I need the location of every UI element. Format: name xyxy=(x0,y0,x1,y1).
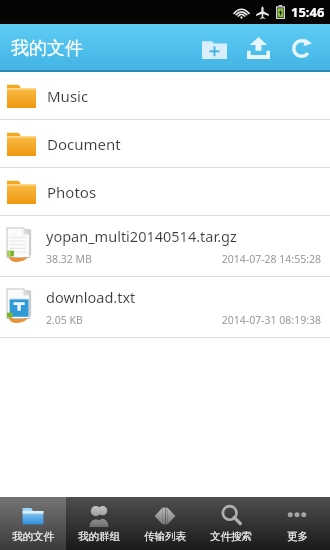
staticText: 文件搜索 xyxy=(210,530,252,543)
button[interactable]: Refresh xyxy=(280,24,322,72)
staticText: 传输列表 xyxy=(144,530,186,543)
button[interactable]: 我的文件 xyxy=(0,497,66,550)
button[interactable]: yopan_multi20140514.tar.gz xyxy=(0,216,330,276)
button[interactable]: 文件搜索 xyxy=(198,497,264,550)
staticText: 38.32 MB xyxy=(46,252,92,266)
staticText: 我的文件 xyxy=(12,530,54,543)
staticText: yopan_multi20140514.tar.gz xyxy=(46,226,237,246)
staticText: Photos xyxy=(47,182,97,202)
staticText: download.txt xyxy=(46,287,136,307)
staticText: 更多 xyxy=(287,530,308,543)
button[interactable]: download.txt xyxy=(0,277,330,337)
staticText: 2014-07-31 08:19:38 xyxy=(221,313,321,327)
staticText: 我的群组 xyxy=(78,530,120,543)
staticText: Music xyxy=(47,86,89,106)
button[interactable]: Upload xyxy=(236,24,280,72)
button[interactable]: Music xyxy=(0,72,330,119)
staticText: 我的文件 xyxy=(11,37,83,60)
staticText: Document xyxy=(47,134,121,154)
staticText: 2014-07-28 14:55:28 xyxy=(221,252,321,266)
staticText: 15:46 xyxy=(291,3,325,21)
button[interactable]: New folder xyxy=(192,24,236,72)
button[interactable]: Document xyxy=(0,120,330,167)
button[interactable]: Photos xyxy=(0,168,330,215)
button[interactable]: 传输列表 xyxy=(132,497,198,550)
staticText: 2.05 KB xyxy=(46,313,83,327)
button[interactable]: 更多 xyxy=(264,497,330,550)
button[interactable]: 我的群组 xyxy=(66,497,132,550)
